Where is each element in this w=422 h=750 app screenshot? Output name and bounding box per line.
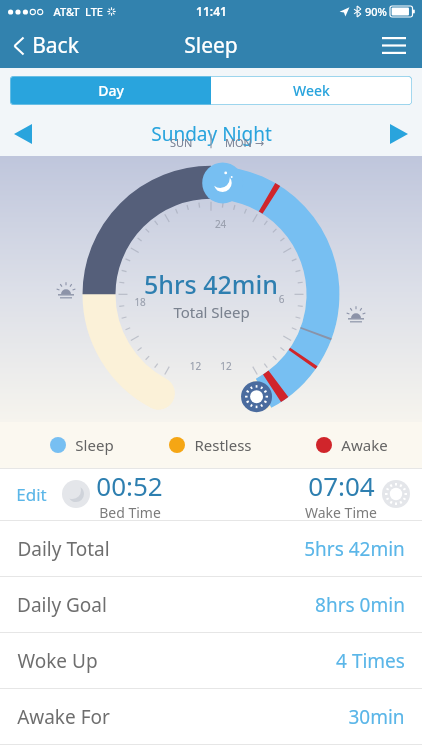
button[interactable]: Next day	[376, 114, 422, 154]
staticText: Wake Time	[305, 503, 377, 520]
staticText: Awake For	[17, 704, 110, 730]
button[interactable]: Daily Total	[0, 521, 422, 576]
button[interactable]: Day	[10, 76, 211, 105]
staticText: Restless	[194, 435, 252, 455]
staticText: 07:04	[308, 468, 375, 503]
staticText: Day	[98, 81, 124, 100]
staticText: LTE	[85, 4, 103, 19]
button[interactable]: Previous day	[0, 114, 46, 154]
staticText: Sleep	[75, 435, 114, 455]
staticText: Awake	[341, 435, 388, 455]
button[interactable]: Awake For	[0, 689, 422, 744]
button[interactable]: Daily Goal	[0, 577, 422, 632]
staticText: 5hrs 42min	[304, 536, 405, 562]
button[interactable]: Back	[0, 25, 91, 66]
staticText: 4 Times	[336, 648, 405, 674]
staticText: AT&T	[53, 4, 80, 19]
staticText: Bed Time	[99, 503, 161, 520]
staticText: 11:41	[196, 3, 227, 19]
staticText: Daily Goal	[17, 592, 107, 618]
button[interactable]: Edit	[0, 473, 57, 516]
staticText: Daily Total	[17, 536, 110, 562]
button[interactable]: Menu	[366, 27, 422, 64]
staticText: Woke Up	[17, 648, 98, 674]
button[interactable]: Woke Up	[0, 633, 422, 688]
staticText: 30min	[348, 704, 405, 730]
staticText: Total Sleep	[173, 302, 250, 322]
staticText: 90%	[365, 4, 387, 19]
staticText: 00:52	[96, 468, 163, 503]
staticText: 8hrs 0min	[315, 592, 405, 618]
button[interactable]: Week	[211, 76, 412, 105]
staticText: Week	[293, 81, 330, 100]
staticText: Back	[32, 31, 79, 60]
staticText: 5hrs 42min	[144, 267, 278, 301]
staticText: Sunday Night	[151, 121, 272, 147]
staticText: Sleep	[184, 31, 238, 60]
